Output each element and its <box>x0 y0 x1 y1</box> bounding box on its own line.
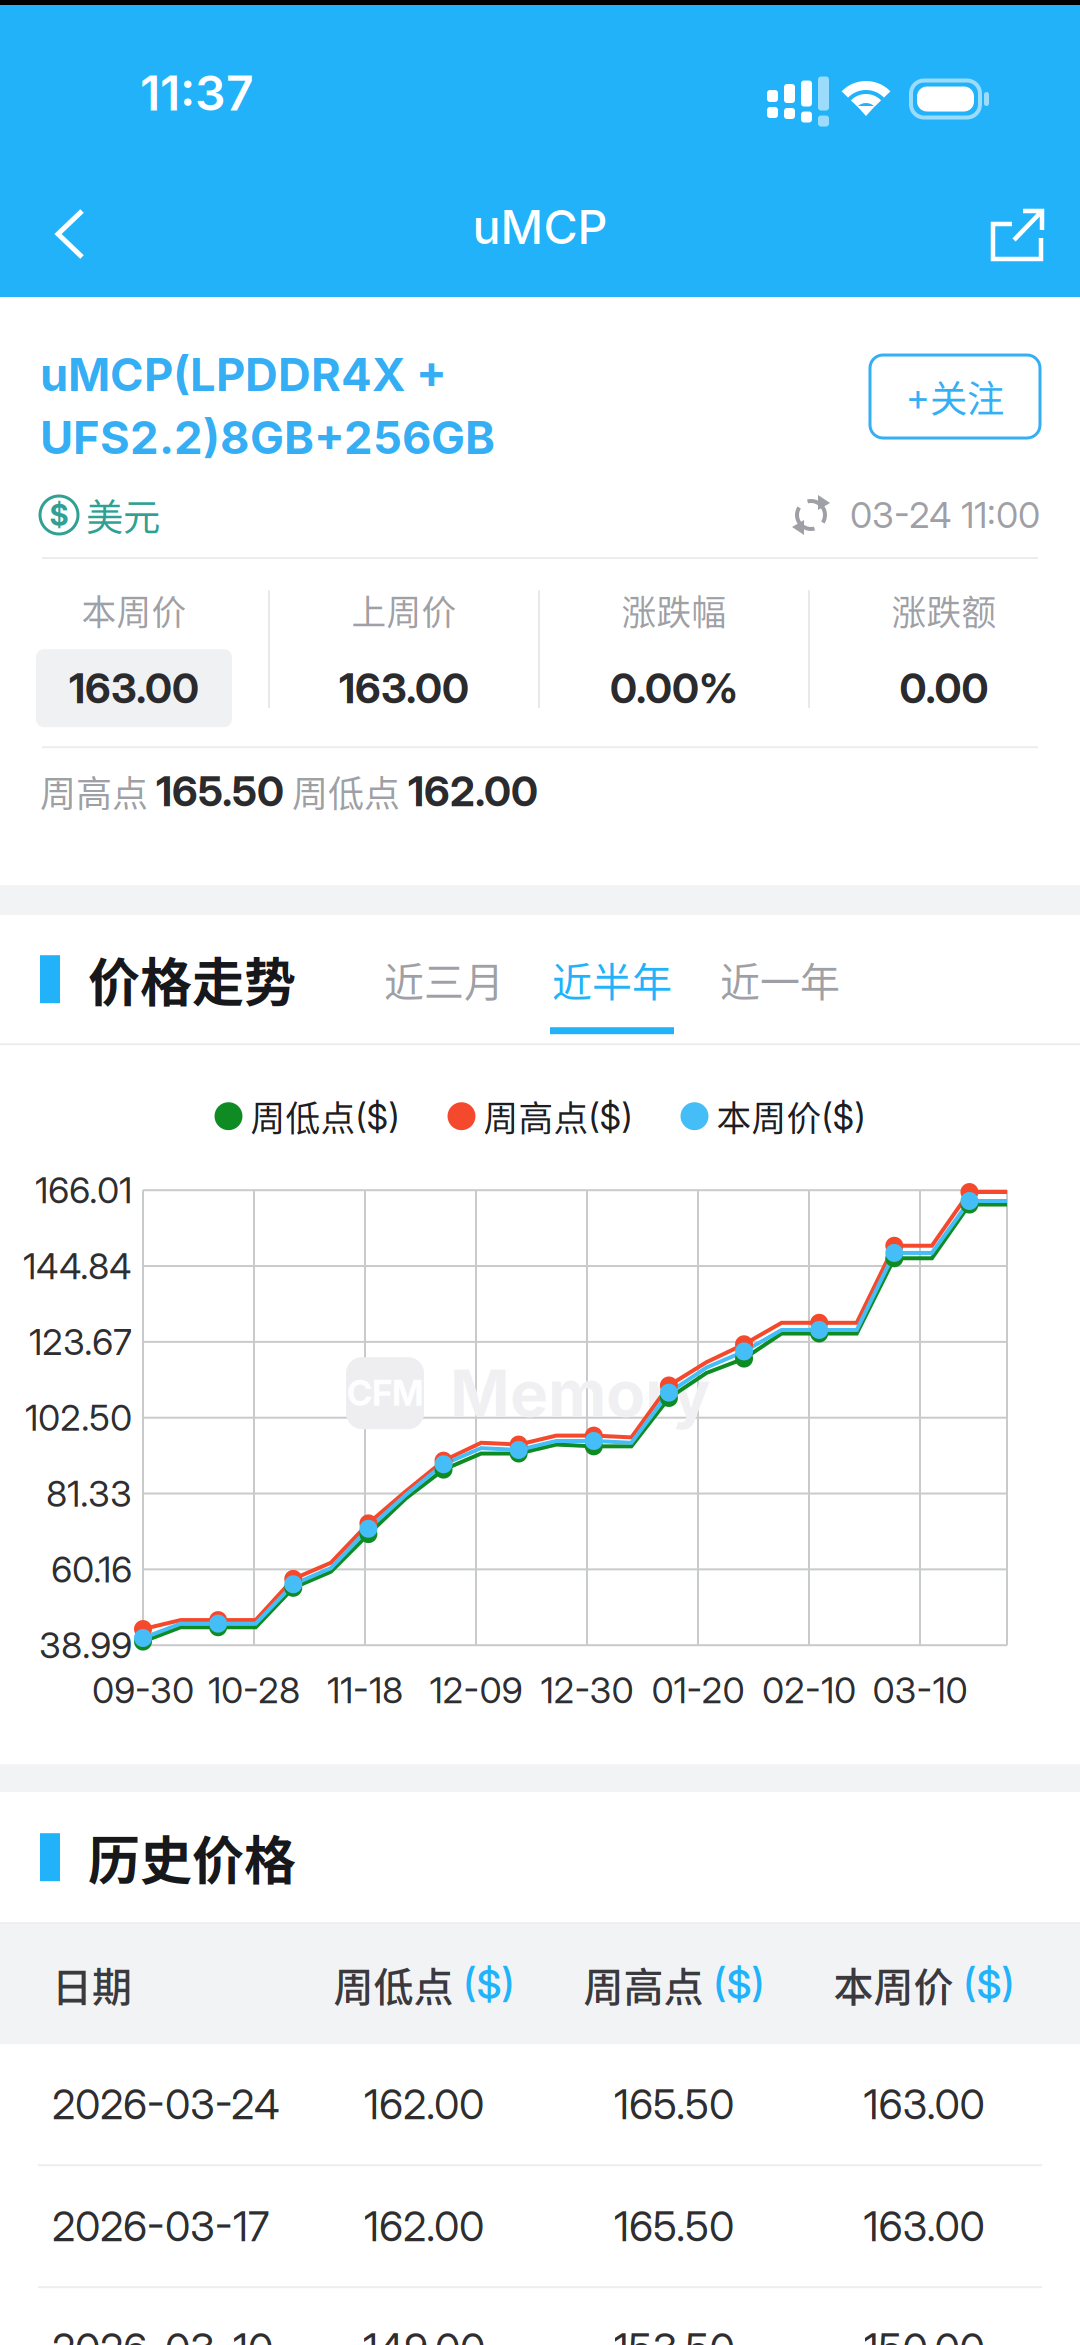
staticText: 涨跌幅 <box>621 585 726 635</box>
staticText: 162.00 <box>364 2079 484 2129</box>
staticText: 165.50 <box>614 2079 734 2129</box>
staticText: 162.00 <box>408 766 538 816</box>
staticText: 本周价 <box>833 1955 953 2013</box>
staticText: 163.00 <box>69 663 199 713</box>
button[interactable]: +关注 <box>870 343 1040 438</box>
staticText: ($) <box>703 1960 764 2008</box>
button[interactable]: 近一年 <box>718 915 842 1044</box>
staticText: 81.33 <box>46 1472 132 1515</box>
staticText: 03-24 11:00 <box>832 493 1040 537</box>
staticText: Memory <box>450 1354 711 1432</box>
staticText: ($) <box>953 1960 1014 2008</box>
staticText: $ <box>49 497 68 533</box>
staticText: 周高点($) <box>475 1091 632 1141</box>
button[interactable]: 2026-03-24 <box>0 2044 1080 2164</box>
staticText: 163.00 <box>863 2079 984 2129</box>
staticText: 149.00 <box>363 2323 485 2345</box>
button[interactable]: 近半年 <box>550 915 674 1044</box>
staticText: 150.00 <box>863 2323 984 2345</box>
staticText: 2026-03-17 <box>52 2201 269 2251</box>
button[interactable]: 2026-03-17 <box>0 2166 1080 2286</box>
staticText: uMCP <box>472 199 607 255</box>
staticText: 162.00 <box>364 2201 484 2251</box>
staticText: 09-30 <box>92 1668 194 1712</box>
staticText: 163.00 <box>339 663 469 713</box>
staticText: 周高点 <box>40 765 156 817</box>
staticText: 153.50 <box>613 2323 734 2345</box>
staticText: 近一年 <box>720 950 840 1008</box>
staticText: 近三月 <box>384 950 504 1008</box>
staticText: 01-20 <box>651 1668 744 1712</box>
staticText: 165.50 <box>614 2201 734 2251</box>
staticText: 近半年 <box>552 950 672 1008</box>
staticText: 上周价 <box>351 585 456 635</box>
staticText: 38.99 <box>39 1623 132 1667</box>
staticText: 周低点 <box>333 1955 453 2013</box>
staticText: 02-10 <box>762 1668 856 1712</box>
staticText: 周低点 <box>284 765 408 817</box>
staticText: +关注 <box>906 369 1004 424</box>
button[interactable]: 2026-03-10 <box>0 2288 1080 2345</box>
staticText: ($) <box>453 1960 514 2008</box>
staticText: 周高点 <box>583 1955 703 2013</box>
staticText: 03-10 <box>872 1668 967 1712</box>
staticText: 本周价 <box>81 585 186 635</box>
button[interactable]: Back <box>0 166 130 302</box>
staticText: 本周价($) <box>708 1091 865 1141</box>
staticText: 价格走势 <box>88 942 296 1017</box>
staticText: CFM <box>347 1372 423 1414</box>
button[interactable]: Share <box>946 166 1080 304</box>
staticText: 12-30 <box>540 1668 633 1712</box>
staticText: uMCP(LPDDR4X + <box>40 347 447 402</box>
staticText: 2026-03-10 <box>52 2323 273 2345</box>
staticText: 166.01 <box>35 1168 132 1212</box>
staticText: 163.00 <box>863 2201 984 2251</box>
staticText: 60.16 <box>51 1548 132 1591</box>
staticText: 123.67 <box>29 1320 132 1364</box>
button[interactable]: 近三月 <box>382 915 506 1044</box>
staticText: 10-28 <box>208 1668 300 1712</box>
staticText: 0.00% <box>610 663 738 713</box>
staticText: 12-09 <box>429 1668 522 1712</box>
staticText: 144.84 <box>23 1244 132 1288</box>
staticText: 历史价格 <box>88 1820 296 1895</box>
staticText: 11:37 <box>140 64 254 122</box>
staticText: 周低点($) <box>242 1091 399 1141</box>
staticText: 涨跌额 <box>891 585 996 635</box>
staticText: 0.00 <box>899 663 988 713</box>
staticText: 2026-03-24 <box>52 2079 280 2129</box>
staticText: 165.50 <box>156 766 284 816</box>
staticText: 102.50 <box>25 1396 132 1439</box>
staticText: 11-18 <box>327 1668 403 1712</box>
staticText: UFS2.2)8GB+256GB <box>40 410 495 465</box>
staticText: 美元 <box>78 488 160 542</box>
staticText: 日期 <box>52 1955 132 2013</box>
